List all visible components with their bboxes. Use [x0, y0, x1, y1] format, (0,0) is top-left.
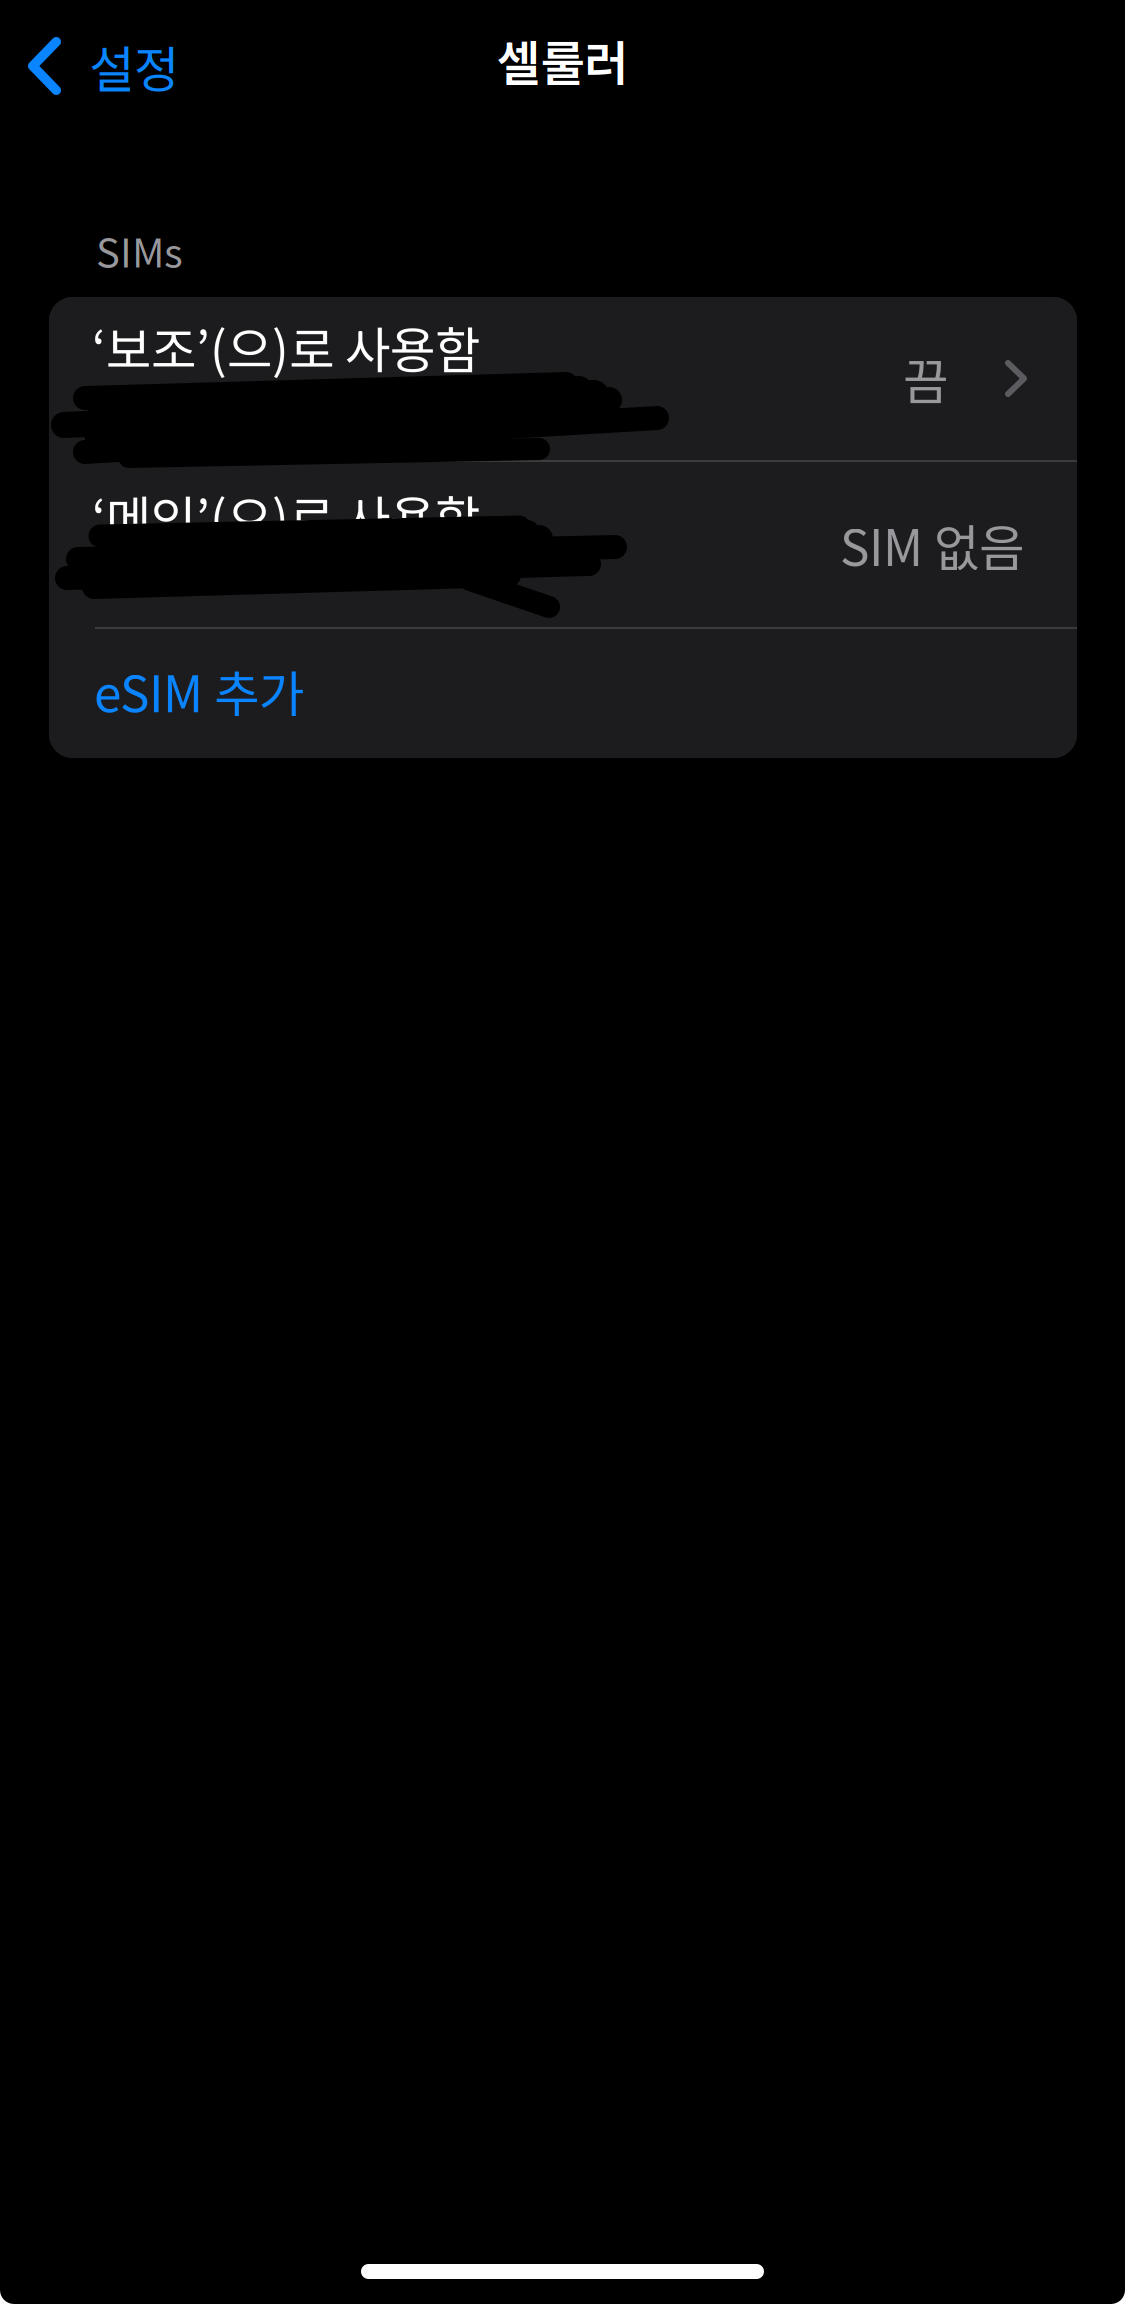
staticText: SIM 없음 — [840, 509, 1024, 580]
staticText: 설정 — [89, 30, 179, 102]
button[interactable]: ‘보조’(으)로 사용함 — [49, 297, 1077, 460]
staticText: 셀룰러 — [496, 25, 628, 95]
staticText: ‘메인’(으)로 사용함 — [92, 480, 480, 551]
button[interactable]: 설정 — [0, 6, 197, 126]
staticText: ‘보조’(으)로 사용함 — [92, 311, 480, 382]
staticText: SIMs — [96, 221, 183, 279]
button[interactable]: ‘메인’(으)로 사용함 — [49, 462, 1077, 627]
staticText: eSIM 추가 — [94, 655, 304, 726]
staticText: 끔 — [903, 343, 948, 414]
button[interactable]: eSIM 추가 — [49, 629, 1077, 758]
